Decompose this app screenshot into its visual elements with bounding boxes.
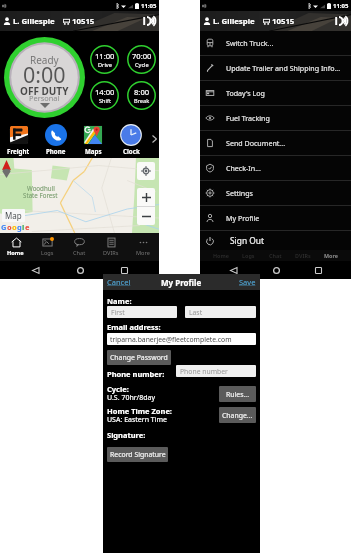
button[interactable]: Connection status	[333, 13, 348, 29]
staticText: Change...	[222, 411, 253, 420]
button[interactable]: More	[127, 233, 159, 261]
button[interactable]: 70:00	[127, 45, 156, 74]
staticText: g	[17, 222, 22, 232]
staticText: Today's Log	[226, 88, 265, 98]
staticText: Name:	[107, 296, 132, 306]
staticText: o	[7, 222, 12, 232]
staticText: e	[25, 222, 30, 232]
button[interactable]: Change...	[219, 407, 256, 423]
staticText: Signature:	[107, 430, 146, 440]
button[interactable]: Cancel	[107, 277, 131, 287]
button[interactable]: Maps	[74, 120, 112, 158]
staticText: Phone number	[180, 367, 228, 376]
button[interactable]: Rules...	[219, 386, 256, 402]
staticText: G	[1, 222, 7, 232]
button[interactable]: Back	[224, 261, 242, 279]
staticText: Switch Truck...	[226, 38, 274, 48]
staticText: Chat	[73, 249, 86, 257]
button[interactable]: 8:00	[127, 81, 156, 110]
staticText: Woodhull	[27, 184, 55, 192]
button[interactable]: Phone	[37, 120, 74, 158]
button[interactable]: Home	[0, 233, 31, 261]
button[interactable]: Check-In...	[200, 156, 351, 180]
staticText: Chat	[269, 252, 282, 259]
staticText: Send Document...	[226, 138, 286, 148]
staticText: DVIRs	[103, 249, 119, 257]
staticText: Home Time Zone:	[107, 406, 172, 416]
button[interactable]: Home	[71, 261, 89, 279]
button[interactable]: Freight	[0, 120, 37, 158]
button[interactable]: Switch Truck...	[200, 31, 351, 55]
staticText: 14:00	[95, 87, 115, 97]
staticText: 11:05	[141, 2, 157, 10]
button[interactable]: Home	[267, 261, 285, 279]
staticText: 11:00	[95, 51, 115, 61]
button[interactable]: Fuel Tracking	[200, 106, 351, 130]
staticText: triparna.banerjee@fleetcomplete.com	[110, 335, 232, 344]
staticText: 8:00	[134, 87, 150, 97]
staticText: My Profile	[226, 213, 260, 223]
button[interactable]: Phone number	[176, 365, 256, 377]
staticText: Phone	[46, 147, 66, 155]
button[interactable]: Zoom in	[137, 188, 155, 206]
button[interactable]: Settings	[200, 181, 351, 205]
staticText: Ready	[30, 53, 59, 67]
staticText: Maps	[85, 147, 102, 155]
button[interactable]: Chat	[63, 233, 95, 261]
button[interactable]: My Profile	[200, 206, 351, 230]
button[interactable]: Logs	[31, 233, 63, 261]
staticText: Drive	[98, 61, 112, 69]
button[interactable]: Zoom out	[137, 207, 155, 225]
staticText: Rules...	[226, 390, 250, 399]
button[interactable]: Connection status	[141, 13, 156, 29]
staticText: More	[324, 252, 338, 259]
staticText: My Profile	[161, 277, 202, 288]
button[interactable]: Update Trailer and Shipping Info...	[200, 56, 351, 80]
staticText: Freight	[7, 147, 30, 155]
button[interactable]: Recents	[115, 261, 133, 279]
staticText: Home	[7, 249, 24, 257]
staticText: Break	[134, 97, 150, 105]
button[interactable]: 14:00	[90, 81, 119, 110]
button[interactable]: Last	[185, 306, 256, 318]
button[interactable]: Ready	[3, 37, 86, 118]
button[interactable]: Back	[26, 261, 44, 279]
staticText: Home	[213, 252, 229, 259]
staticText: State Forest	[23, 191, 58, 199]
staticText: 10515	[72, 16, 95, 27]
staticText: Cycle	[135, 61, 149, 69]
button[interactable]: Record Signature	[107, 447, 168, 462]
staticText: Email address:	[107, 322, 161, 332]
button[interactable]: Save	[239, 277, 256, 287]
staticText: Logs	[242, 252, 255, 259]
button[interactable]: Clock	[112, 120, 150, 158]
staticText: USA: Eastern Time	[107, 415, 168, 425]
button[interactable]: Recents	[309, 261, 327, 279]
staticText: L. Gillespie	[13, 16, 55, 27]
button[interactable]: Map	[2, 209, 25, 222]
staticText: Sign Out	[230, 235, 265, 246]
staticText: l	[22, 222, 25, 232]
staticText: More	[136, 249, 150, 257]
staticText: Check-In...	[226, 163, 261, 173]
staticText: 11:05	[333, 2, 349, 10]
staticText: Settings	[226, 188, 253, 198]
button[interactable]: My location	[137, 162, 155, 180]
staticText: OFF DUTY	[20, 84, 69, 98]
button[interactable]: More apps	[150, 120, 159, 158]
staticText: Shift	[99, 97, 111, 105]
staticText: Personal	[29, 93, 60, 103]
button[interactable]: triparna.banerjee@fleetcomplete.com	[107, 333, 256, 345]
button[interactable]: Today's Log	[200, 81, 351, 105]
button[interactable]: First	[107, 306, 177, 318]
staticText: Logs	[41, 249, 54, 257]
staticText: 70:00	[132, 51, 152, 61]
button[interactable]: DVIRs	[95, 233, 127, 261]
button[interactable]: Send Document...	[200, 131, 351, 155]
button[interactable]: Sign Out	[200, 231, 351, 250]
staticText: U.S. 70hr/8day	[107, 393, 156, 403]
button[interactable]: 11:00	[90, 45, 119, 74]
staticText: Clock	[123, 147, 140, 155]
button[interactable]: Change Password	[107, 350, 171, 365]
staticText: Change Password	[110, 353, 168, 362]
